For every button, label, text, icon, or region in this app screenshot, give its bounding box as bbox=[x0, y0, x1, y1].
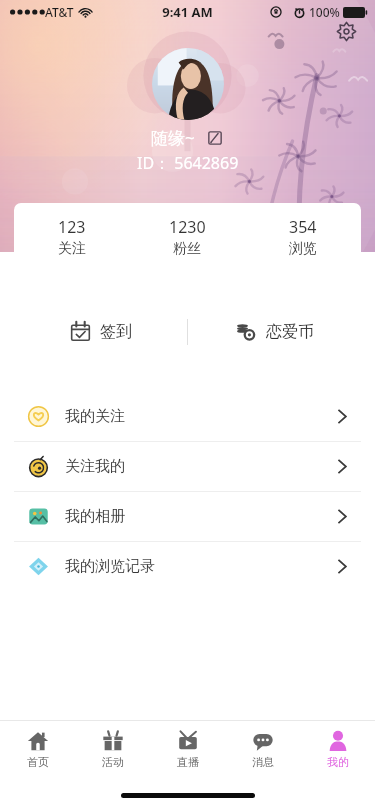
button[interactable]: 关注我的 bbox=[14, 442, 361, 491]
staticText: 随缘~ bbox=[151, 126, 195, 149]
staticText: 354 bbox=[289, 216, 317, 238]
staticText: 活动 bbox=[102, 755, 124, 769]
button[interactable]: 签到 bbox=[14, 289, 187, 374]
button[interactable]: 首页 bbox=[0, 720, 75, 778]
button[interactable]: 恋爱币 bbox=[188, 289, 361, 374]
staticText: 粉丝 bbox=[173, 240, 201, 258]
staticText: 我的相册 bbox=[65, 507, 125, 526]
staticText: 直播 bbox=[177, 755, 199, 769]
button[interactable]: 直播 bbox=[150, 720, 225, 778]
button[interactable]: 354 bbox=[245, 203, 361, 271]
staticText: 恋爱币 bbox=[266, 322, 314, 342]
button[interactable]: 我的相册 bbox=[14, 492, 361, 541]
staticText: AT&T bbox=[45, 4, 74, 20]
staticText: 9:41 AM bbox=[162, 3, 213, 21]
button[interactable]: Profile photo bbox=[152, 48, 224, 120]
staticText: 100% bbox=[309, 4, 340, 20]
staticText: 浏览 bbox=[289, 240, 317, 258]
staticText: 关注 bbox=[58, 240, 86, 258]
button[interactable]: 1230 bbox=[129, 203, 245, 271]
staticText: 我的浏览记录 bbox=[65, 557, 155, 576]
button[interactable]: 我的浏览记录 bbox=[14, 542, 361, 591]
staticText: 首页 bbox=[27, 755, 49, 769]
staticText: 123 bbox=[58, 216, 86, 238]
button[interactable]: 我的 bbox=[300, 720, 375, 778]
button[interactable]: 消息 bbox=[225, 720, 300, 778]
staticText: 1230 bbox=[169, 216, 206, 238]
button[interactable]: Edit nickname bbox=[205, 128, 225, 148]
button[interactable]: 活动 bbox=[75, 720, 150, 778]
staticText: 签到 bbox=[100, 322, 132, 342]
staticText: 我的 bbox=[327, 755, 349, 769]
button[interactable]: 我的关注 bbox=[14, 392, 361, 441]
staticText: ID： 5642869 bbox=[137, 152, 239, 174]
staticText: 我的关注 bbox=[65, 407, 125, 426]
button[interactable]: 123 bbox=[14, 203, 129, 271]
staticText: 消息 bbox=[252, 755, 274, 769]
staticText: 关注我的 bbox=[65, 457, 125, 476]
button[interactable]: Settings bbox=[329, 14, 363, 48]
